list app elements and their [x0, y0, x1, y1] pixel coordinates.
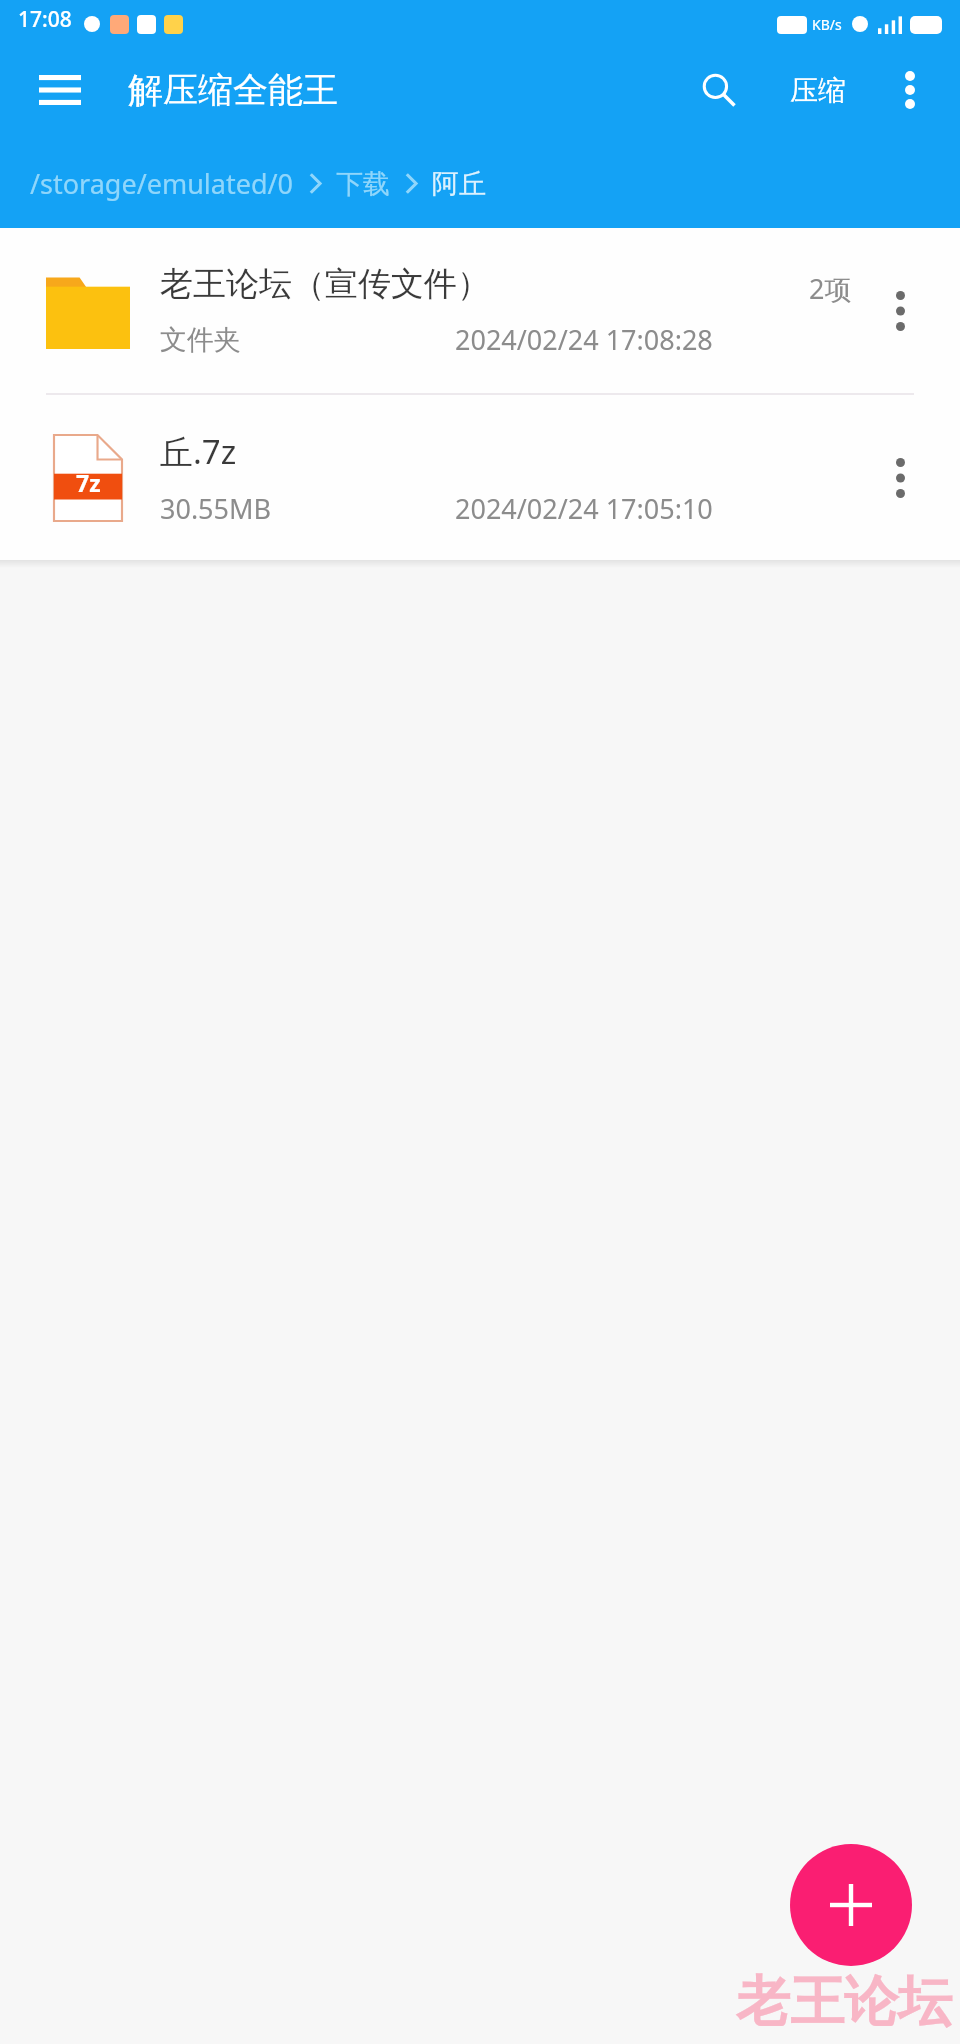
- button[interactable]: Item options: [862, 273, 938, 349]
- staticText: 30.55MB: [160, 490, 272, 527]
- staticText: 2项: [809, 270, 852, 307]
- button[interactable]: 阿丘: [432, 167, 486, 201]
- staticText: /storage/emulated/0: [30, 165, 294, 202]
- staticText: 阿丘: [432, 167, 486, 201]
- button[interactable]: Item options: [862, 440, 938, 516]
- staticText: KB/s: [812, 15, 842, 34]
- button[interactable]: 下载: [336, 167, 390, 201]
- button[interactable]: Add: [790, 1844, 912, 1966]
- staticText: 压缩: [790, 73, 846, 108]
- button[interactable]: 7z: [0, 395, 960, 560]
- staticText: 7z: [76, 467, 101, 498]
- staticText: 丘.7z: [160, 429, 237, 474]
- button[interactable]: /storage/emulated/0: [30, 165, 294, 202]
- button[interactable]: 压缩: [784, 63, 852, 118]
- staticText: 老王论坛（宣传文件）: [160, 263, 490, 305]
- staticText: 下载: [336, 167, 390, 201]
- button[interactable]: Menu: [28, 58, 92, 122]
- button[interactable]: More options: [880, 60, 940, 120]
- staticText: 解压缩全能王: [128, 68, 338, 112]
- button[interactable]: 老王论坛（宣传文件）: [0, 228, 960, 393]
- staticText: 老王论坛: [736, 1968, 952, 2036]
- staticText: 文件夹: [160, 323, 241, 357]
- staticText: 2024/02/24 17:08:28: [455, 321, 713, 358]
- staticText: 2024/02/24 17:05:10: [455, 490, 713, 527]
- staticText: 17:08: [18, 5, 72, 34]
- button[interactable]: Search: [688, 59, 750, 121]
